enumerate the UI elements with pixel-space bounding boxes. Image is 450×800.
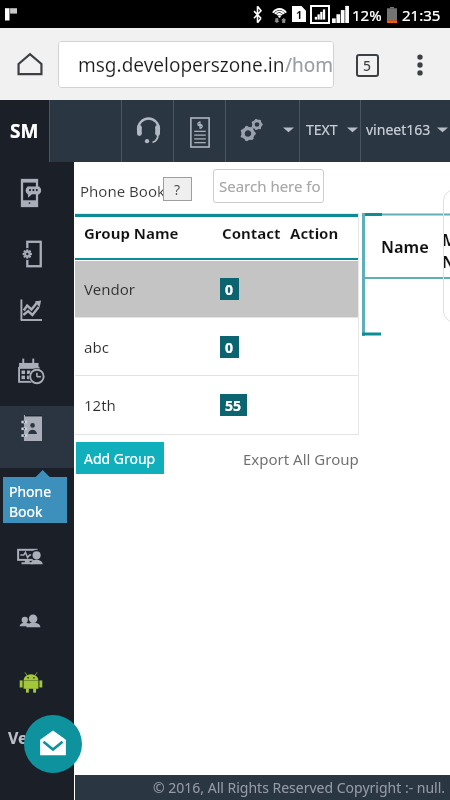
staticText: Export All Group [243, 449, 359, 469]
staticText: Group Name [84, 223, 179, 243]
button[interactable]: Reports [0, 295, 74, 327]
staticText: Name [381, 236, 429, 258]
button[interactable]: SM [0, 100, 49, 162]
staticText: 12th [84, 395, 116, 415]
button[interactable]: msg.developerszone.in [58, 41, 334, 88]
button[interactable]: Scheduler [0, 355, 74, 387]
staticText: SM [10, 118, 39, 144]
staticText: 0 [225, 338, 234, 357]
staticText: M N [442, 229, 450, 273]
button[interactable]: Settings [226, 100, 299, 162]
staticText: Search here fo [219, 176, 321, 196]
button[interactable]: Open chat [24, 715, 82, 773]
button[interactable]: Invoice [174, 100, 225, 162]
staticText: 55 [225, 396, 242, 415]
button[interactable]: Android app [0, 666, 74, 698]
button[interactable]: TEXT [300, 100, 360, 162]
staticText: msg.developerszone.in [78, 52, 285, 78]
button[interactable]: Tabs [350, 48, 384, 82]
staticText: /hom [285, 52, 334, 78]
staticText: ? [174, 180, 181, 199]
button[interactable]: Export All Group [243, 449, 359, 469]
staticText: Action [290, 223, 339, 243]
button[interactable]: Device settings [0, 238, 74, 270]
staticText: 12% [352, 5, 382, 25]
button[interactable]: Search here fo [213, 169, 324, 203]
button[interactable]: vineet163 [361, 100, 450, 162]
staticText: 21:35 [402, 5, 441, 25]
staticText: © 2016, All Rights Reserved Copyright :-… [153, 778, 446, 797]
staticText: abc [84, 337, 109, 357]
staticText: TEXT [306, 120, 338, 139]
button[interactable]: Users [0, 605, 74, 637]
staticText: 5 [363, 56, 372, 75]
staticText: Phone Book [9, 482, 73, 522]
staticText: Contact [222, 223, 281, 243]
button[interactable]: ? [163, 177, 192, 201]
button[interactable]: 12th [75, 376, 358, 433]
button[interactable]: Add Group [76, 442, 164, 474]
staticText: Vendor [84, 279, 135, 299]
staticText: Ver [8, 727, 35, 749]
button[interactable]: More options [403, 48, 437, 82]
button[interactable]: Support [122, 100, 173, 162]
button[interactable]: Vendor [75, 261, 358, 317]
staticText: Add Group [84, 449, 156, 468]
staticText: vineet163 [366, 120, 431, 139]
button[interactable]: Live monitor [0, 541, 74, 573]
button[interactable]: abc [75, 318, 358, 375]
staticText: Phone Book [80, 181, 165, 201]
staticText: 1 [296, 7, 303, 22]
staticText: 0 [225, 280, 234, 299]
button[interactable]: Phone Book [0, 412, 74, 444]
button[interactable]: Home [8, 42, 52, 86]
button[interactable]: Bulk SMS [0, 177, 74, 209]
